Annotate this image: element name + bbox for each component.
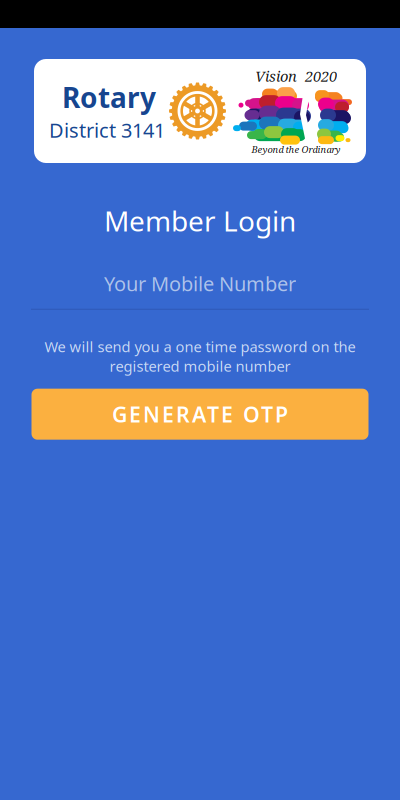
staticText: GENERATE OTP bbox=[112, 400, 288, 428]
button[interactable]: GENERATE OTP bbox=[31, 389, 368, 440]
staticText: Beyond the Ordinary bbox=[251, 143, 340, 156]
staticText: registered mobile number bbox=[109, 356, 290, 376]
staticText: District 3141 bbox=[49, 117, 165, 143]
staticText: Your Mobile Number bbox=[104, 270, 296, 297]
staticText: Vision 2020 bbox=[255, 66, 337, 86]
staticText: We will send you a one time password on … bbox=[44, 337, 355, 356]
staticText: Member Login bbox=[104, 202, 296, 239]
staticText: Rotary bbox=[62, 79, 156, 116]
